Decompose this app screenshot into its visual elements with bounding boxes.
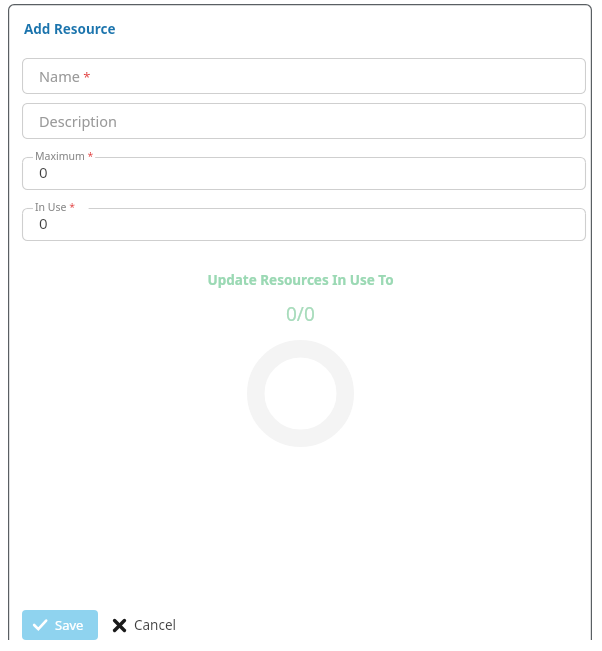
button[interactable]: In Use * bbox=[22, 199, 586, 241]
staticText: In Use * bbox=[35, 200, 75, 214]
button[interactable]: Resources in use progress bbox=[247, 340, 354, 447]
staticText: Description bbox=[39, 111, 118, 131]
button[interactable]: Description bbox=[22, 103, 586, 139]
button[interactable]: Name * bbox=[22, 58, 586, 94]
staticText: Maximum * bbox=[35, 149, 94, 163]
button[interactable]: Save bbox=[22, 610, 98, 640]
button[interactable]: Maximum * bbox=[22, 148, 586, 190]
staticText: Save bbox=[55, 616, 84, 634]
staticText: 0 bbox=[39, 213, 48, 233]
staticText: Cancel bbox=[134, 616, 177, 634]
staticText: Add Resource bbox=[24, 20, 116, 38]
staticText: 0/0 bbox=[286, 301, 315, 327]
button[interactable]: Add Resource bbox=[22, 18, 118, 40]
staticText: 0 bbox=[39, 162, 48, 182]
staticText: Name * bbox=[39, 66, 91, 86]
staticText: Update Resources In Use To bbox=[207, 271, 394, 289]
button[interactable]: Cancel bbox=[107, 610, 183, 640]
